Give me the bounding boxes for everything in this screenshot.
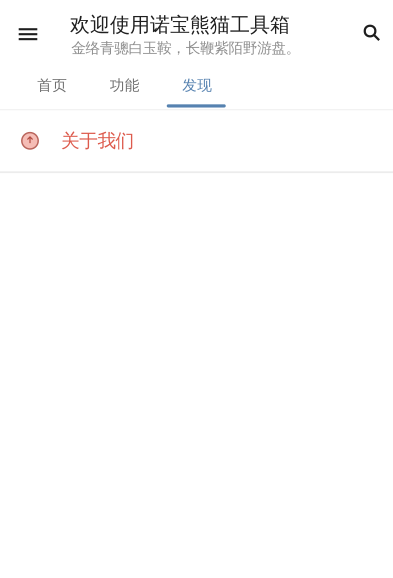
button[interactable]: 发现: [161, 65, 233, 108]
button[interactable]: 功能: [88, 65, 161, 108]
staticText: 首页: [37, 76, 67, 94]
staticText: 金络青骢白玉鞍，长鞭紫陌野游盘。: [71, 39, 301, 57]
staticText: 功能: [110, 76, 140, 94]
staticText: 欢迎使用诺宝熊猫工具箱: [70, 12, 290, 37]
staticText: 发现: [182, 76, 212, 94]
button[interactable]: 首页: [16, 65, 88, 108]
button[interactable]: Menu: [0, 10, 56, 58]
staticText: 关于我们: [61, 129, 135, 152]
button[interactable]: Search: [348, 9, 393, 57]
button[interactable]: 关于我们: [0, 110, 393, 171]
